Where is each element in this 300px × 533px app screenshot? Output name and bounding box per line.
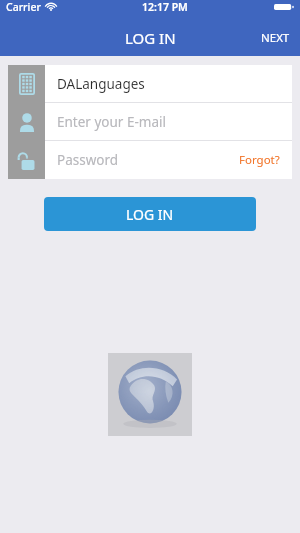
button[interactable]: App logo (108, 353, 192, 436)
staticText: Carrier (6, 0, 41, 14)
button[interactable]: LOG IN (44, 197, 256, 231)
staticText: Enter your E-mail (57, 113, 166, 131)
button[interactable]: Enter your E-mail (8, 103, 292, 141)
staticText: LOG IN (125, 28, 176, 48)
staticText: LOG IN (126, 205, 174, 224)
button[interactable]: Password (8, 141, 292, 179)
staticText: DALanguages (57, 75, 145, 93)
staticText: Password (57, 151, 119, 169)
button[interactable]: DALanguages (8, 65, 292, 103)
staticText: 12:17 PM (142, 0, 188, 14)
button[interactable]: NEXT (251, 22, 300, 54)
button[interactable]: Forgot? (237, 148, 282, 172)
staticText: Forgot? (239, 152, 280, 168)
staticText: NEXT (261, 30, 290, 46)
